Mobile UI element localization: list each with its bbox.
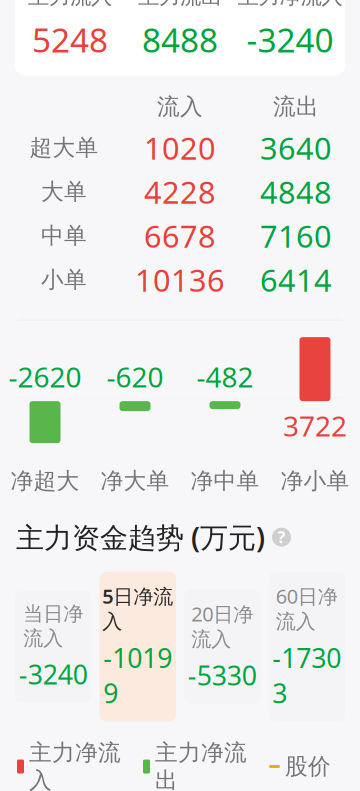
staticText: -17303 [272, 640, 341, 711]
staticText: 主力净流出 [155, 739, 247, 791]
staticText: 6414 [260, 259, 332, 300]
staticText: 中单 [41, 222, 87, 250]
button[interactable]: 5日净流入 [99, 572, 176, 722]
staticText: 3640 [260, 127, 332, 168]
staticText: 60日净流入 [276, 583, 338, 634]
button[interactable]: Help about main capital trend [272, 528, 291, 547]
staticText: 流出 [273, 93, 319, 121]
staticText: 超大单 [29, 134, 98, 162]
staticText: -2620 [8, 358, 81, 395]
staticText: ? [277, 526, 285, 548]
staticText: 7160 [260, 215, 332, 256]
staticText: 主力资金趋势 (万元) [16, 518, 265, 556]
staticText: -3240 [246, 17, 333, 62]
staticText: -620 [106, 358, 163, 395]
staticText: 5248 [32, 17, 108, 62]
staticText: 主力净流入 [29, 739, 121, 791]
staticText: 主力净流入 [237, 0, 342, 9]
staticText: 4848 [260, 171, 332, 212]
staticText: 当日净流入 [23, 601, 83, 650]
staticText: 20日净流入 [191, 600, 253, 651]
staticText: 1020 [144, 127, 216, 168]
staticText: -10199 [103, 640, 172, 711]
staticText: 流入 [157, 93, 203, 121]
staticText: 4228 [144, 171, 216, 212]
staticText: 10136 [135, 259, 225, 300]
staticText: 5日净流入 [102, 583, 173, 634]
button[interactable]: 当日净流入 [15, 590, 91, 703]
staticText: 净大单 [100, 467, 169, 495]
staticText: -5330 [188, 658, 257, 693]
staticText: 3722 [283, 407, 347, 444]
staticText: 大单 [41, 178, 87, 206]
staticText: 6678 [144, 215, 216, 256]
staticText: 净小单 [280, 467, 349, 495]
staticText: 净中单 [190, 467, 259, 495]
staticText: 净超大 [10, 467, 79, 495]
staticText: 8488 [142, 17, 218, 62]
staticText: 主力流出 [138, 0, 222, 9]
staticText: -482 [196, 358, 253, 395]
button[interactable]: 20日净流入 [184, 589, 260, 704]
staticText: 股价 [285, 753, 331, 780]
button[interactable]: 60日净流入 [268, 572, 345, 722]
staticText: 主力流入 [28, 0, 112, 9]
staticText: -3240 [19, 657, 88, 692]
staticText: 小单 [41, 266, 87, 294]
